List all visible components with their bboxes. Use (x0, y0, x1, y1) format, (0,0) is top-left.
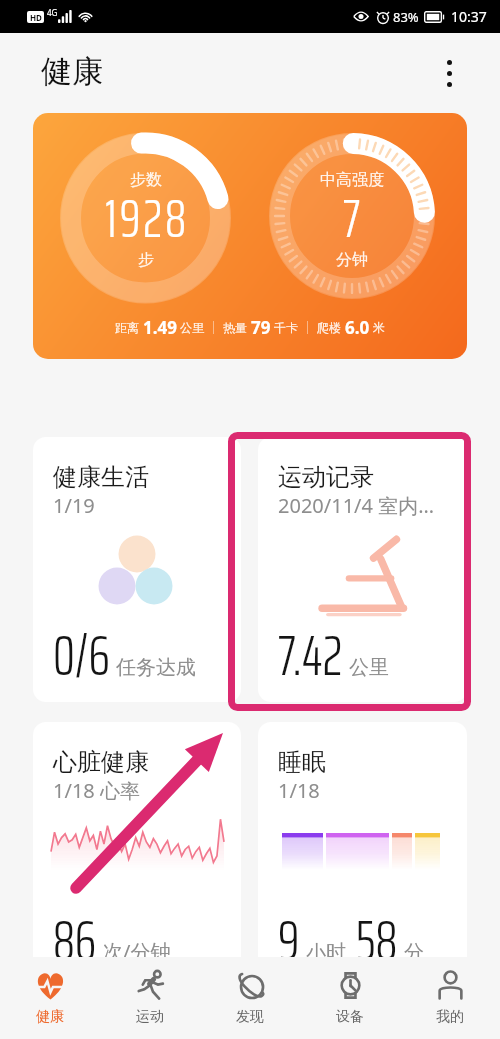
staticText: 步数 (130, 170, 162, 190)
staticText: 1/19 (53, 492, 95, 519)
staticText: HD (30, 12, 42, 23)
staticText: 心脏健康 (53, 747, 149, 777)
button[interactable]: More options (428, 52, 470, 94)
staticText: 距离 (115, 320, 139, 335)
staticText: 1928 (105, 177, 190, 260)
staticText: 58 (356, 898, 398, 985)
staticText: 7.42 (278, 613, 343, 700)
staticText: 爬楼 (317, 320, 341, 335)
button[interactable]: 运动 (100, 957, 200, 1039)
staticText: 任务达成 (116, 655, 196, 680)
staticText: 米 (373, 320, 385, 335)
staticText: 小时 (306, 940, 346, 965)
staticText: 6.0 (345, 316, 370, 339)
staticText: 83% (393, 8, 419, 26)
staticText: 中高强度 (320, 170, 384, 190)
staticText: 热量 (223, 320, 247, 335)
staticText: 分钟 (336, 250, 368, 270)
staticText: 1/18 心率 (53, 777, 140, 804)
button[interactable]: 心脏健康 (33, 722, 241, 987)
staticText: 运动 (136, 1008, 164, 1026)
staticText: 设备 (336, 1008, 364, 1026)
staticText: 步 (138, 250, 154, 270)
staticText: 1/18 (278, 777, 320, 804)
staticText: 我的 (436, 1008, 464, 1026)
staticText: 4G (47, 7, 58, 18)
staticText: 运动记录 (278, 462, 374, 492)
button[interactable]: 健康 (0, 957, 100, 1039)
button[interactable]: 设备 (300, 957, 400, 1039)
button[interactable]: 发现 (200, 957, 300, 1039)
staticText: 睡眠 (278, 747, 326, 777)
staticText: 次/分钟 (103, 938, 171, 965)
staticText: 79 (251, 316, 271, 339)
staticText: 10:37 (451, 7, 487, 26)
staticText: 分 (404, 940, 424, 965)
staticText: 1.49 (143, 316, 177, 339)
staticText: 86 (53, 898, 97, 985)
staticText: 健康 (36, 1008, 64, 1026)
button[interactable]: 健康生活 (33, 437, 241, 702)
staticText: 2020/11/4 室内… (278, 492, 434, 519)
staticText: 9 (278, 898, 300, 985)
staticText: 千卡 (274, 320, 298, 335)
button[interactable]: 运动记录 (258, 437, 467, 702)
staticText: 0/6 (53, 613, 110, 700)
staticText: 健康生活 (53, 462, 149, 492)
staticText: 公里 (349, 655, 389, 680)
button[interactable]: 睡眠 (258, 722, 467, 987)
staticText: 7 (343, 177, 364, 260)
staticText: 发现 (236, 1008, 264, 1026)
staticText: 公里 (180, 320, 204, 335)
button[interactable]: 我的 (400, 957, 500, 1039)
staticText: 健康 (41, 52, 103, 91)
button[interactable]: 步数 (33, 113, 467, 359)
